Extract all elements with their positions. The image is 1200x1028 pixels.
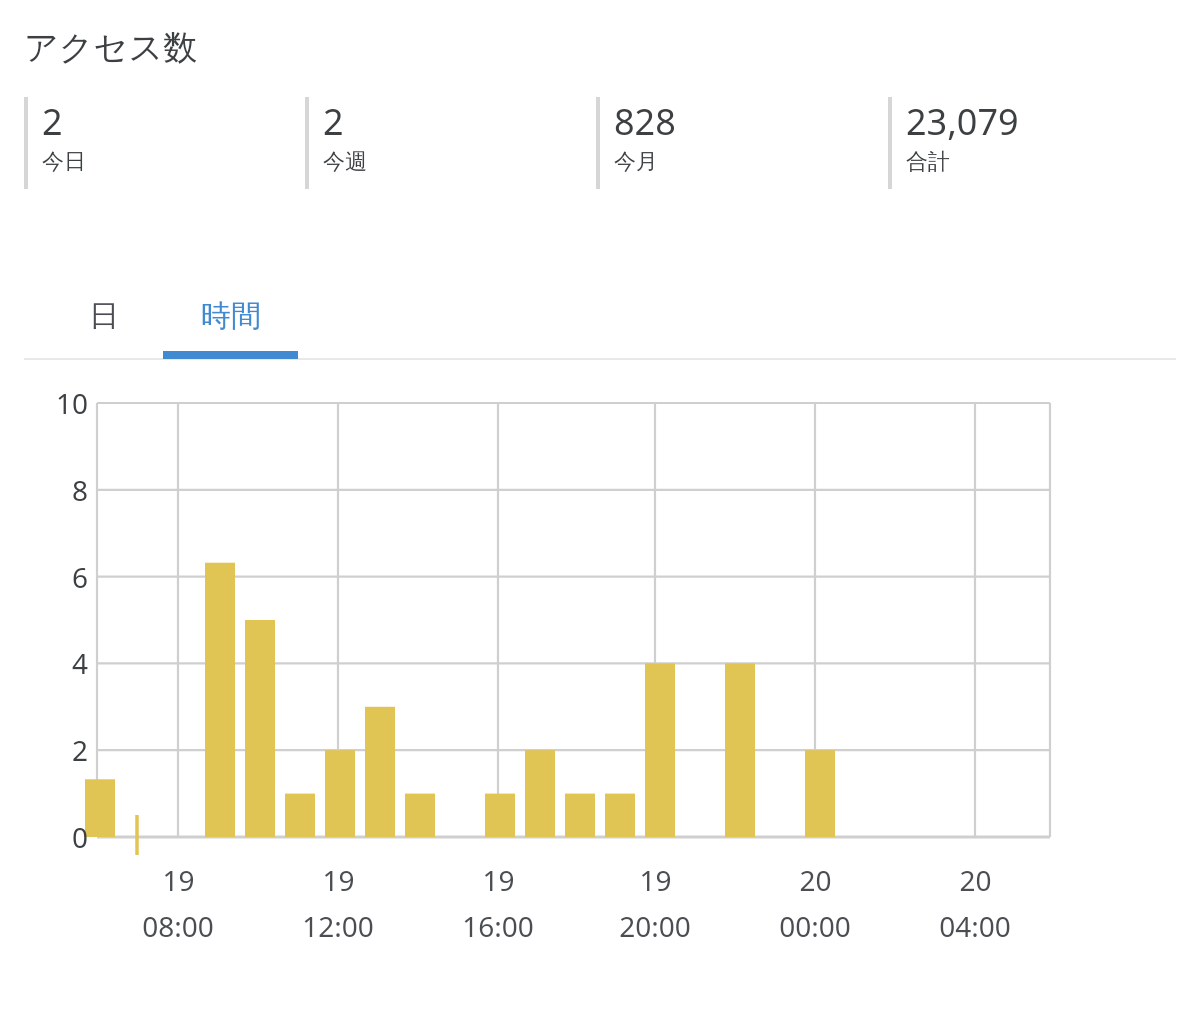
staticText: 828 [614, 97, 676, 146]
staticText: 19 [482, 861, 515, 899]
staticText: アクセス数 [24, 26, 198, 69]
staticText: 2 [71, 731, 88, 769]
button[interactable]: 日 [45, 273, 163, 359]
staticText: 6 [71, 558, 88, 596]
staticText: 今日 [42, 148, 86, 176]
staticText: 00:00 [779, 907, 851, 945]
staticText: 合計 [906, 148, 950, 176]
staticText: 20 [959, 861, 992, 899]
staticText: 08:00 [142, 907, 214, 945]
staticText: 16:00 [462, 907, 534, 945]
staticText: 19 [639, 861, 672, 899]
staticText: 時間 [201, 297, 261, 335]
staticText: 12:00 [302, 907, 374, 945]
staticText: 今月 [614, 148, 658, 176]
button[interactable]: 23,079 [888, 97, 1168, 189]
staticText: 日 [89, 297, 119, 335]
staticText: 0 [71, 818, 88, 856]
staticText: 8 [71, 471, 88, 509]
staticText: 20:00 [619, 907, 691, 945]
staticText: 19 [322, 861, 355, 899]
staticText: 2 [42, 97, 63, 146]
staticText: 今週 [323, 148, 367, 176]
staticText: 10 [55, 384, 88, 422]
button[interactable]: 828 [596, 97, 888, 189]
staticText: 20 [799, 861, 832, 899]
staticText: 19 [162, 861, 195, 899]
button[interactable]: 時間 [163, 273, 298, 359]
staticText: 4 [71, 644, 88, 682]
staticText: 23,079 [906, 97, 1019, 146]
staticText: 04:00 [939, 907, 1011, 945]
button[interactable]: 2 [24, 97, 305, 189]
button[interactable]: 2 [305, 97, 596, 189]
staticText: 2 [323, 97, 344, 146]
